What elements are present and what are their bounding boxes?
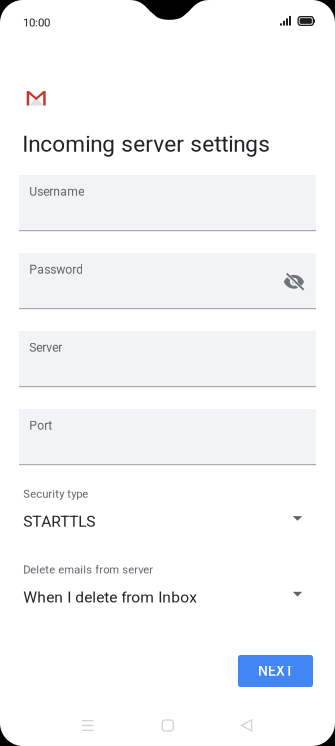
staticText: STARTTLS [23, 512, 95, 531]
staticText: Username [29, 184, 84, 199]
staticText: Server [29, 340, 62, 355]
button[interactable]: Port [19, 409, 316, 465]
staticText: Password [29, 262, 83, 277]
button[interactable]: NEXT [238, 655, 313, 687]
button[interactable]: Password [19, 253, 316, 309]
button[interactable]: Home [146, 703, 190, 746]
staticText: 10:00 [23, 16, 50, 29]
staticText: Incoming server settings [22, 131, 270, 157]
staticText: Delete emails from server [23, 563, 153, 576]
staticText: When I delete from Inbox [23, 588, 197, 606]
button[interactable]: Back [224, 703, 268, 746]
staticText: Port [29, 418, 52, 433]
staticText: NEXT [258, 663, 293, 679]
button[interactable]: Security type [19, 487, 316, 531]
staticText: Security type [23, 487, 88, 500]
button[interactable]: Recents [66, 703, 110, 746]
button[interactable]: Delete emails from server [19, 563, 316, 607]
button[interactable]: Server [19, 331, 316, 387]
button[interactable]: Username [19, 175, 316, 231]
